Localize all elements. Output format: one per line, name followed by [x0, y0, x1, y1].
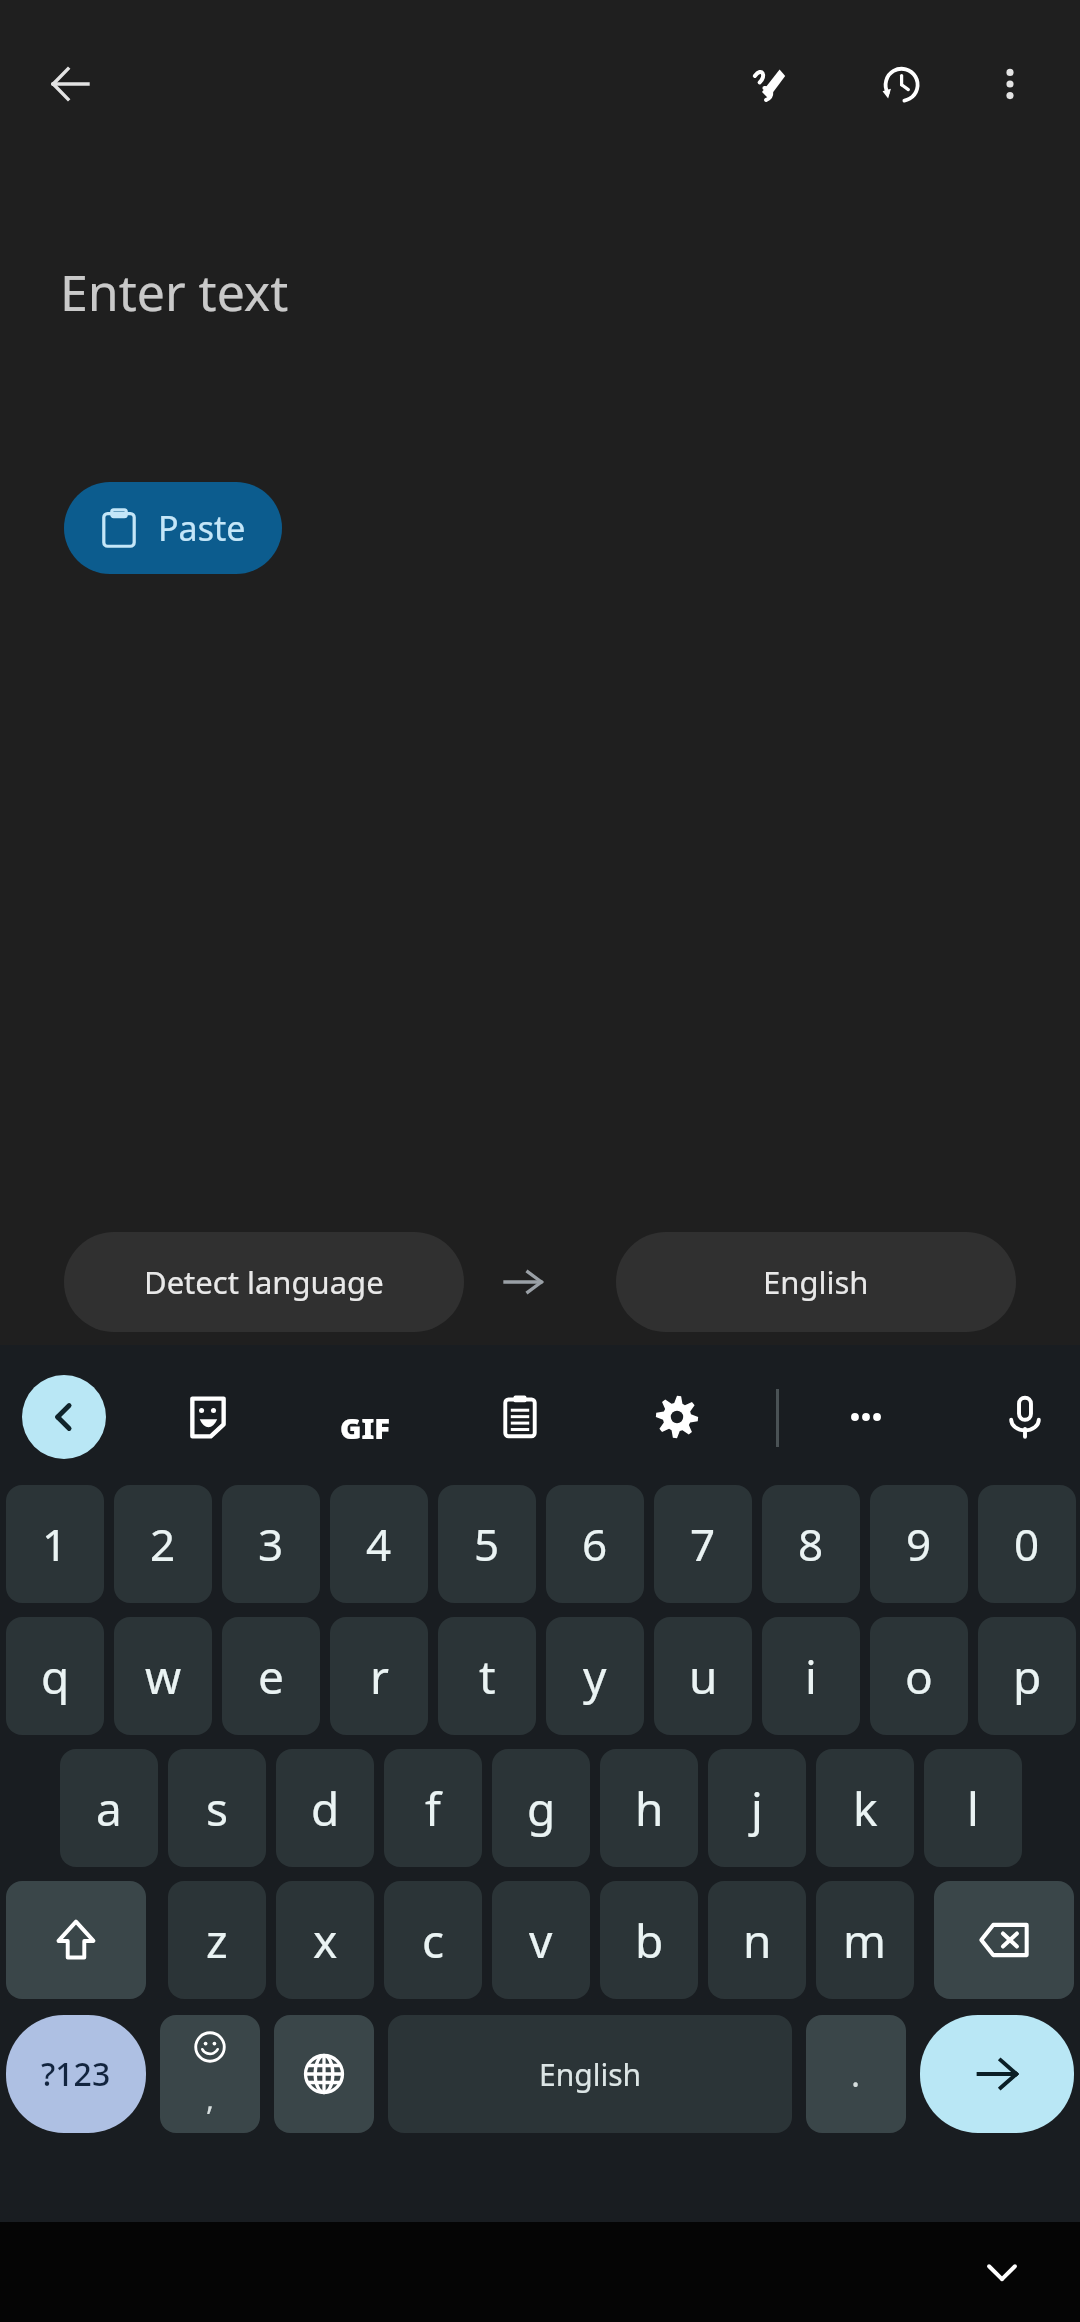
button[interactable]: 2: [114, 1485, 212, 1603]
staticText: p: [1013, 1645, 1042, 1708]
button[interactable]: l: [924, 1749, 1022, 1867]
button[interactable]: m: [816, 1881, 914, 1999]
staticText: m: [843, 1909, 887, 1972]
button[interactable]: u: [654, 1617, 752, 1735]
button[interactable]: y: [546, 1617, 644, 1735]
button[interactable]: i: [762, 1617, 860, 1735]
button[interactable]: 4: [330, 1485, 428, 1603]
button[interactable]: x: [276, 1881, 374, 1999]
button[interactable]: Hide keyboard: [970, 2240, 1034, 2304]
button[interactable]: Emoji: [160, 2015, 260, 2133]
staticText: o: [905, 1645, 933, 1708]
staticText: z: [206, 1909, 228, 1972]
staticText: y: [583, 1645, 607, 1708]
staticText: English: [539, 2054, 642, 2095]
staticText: 3: [258, 1514, 284, 1574]
staticText: u: [689, 1645, 718, 1708]
button[interactable]: 5: [438, 1485, 536, 1603]
button[interactable]: d: [276, 1749, 374, 1867]
button[interactable]: Paste: [64, 482, 282, 574]
staticText: l: [967, 1777, 979, 1840]
staticText: 2: [150, 1514, 176, 1574]
button[interactable]: ?123: [6, 2015, 146, 2133]
button[interactable]: Close toolbar: [22, 1375, 106, 1459]
staticText: h: [635, 1777, 664, 1840]
staticText: g: [527, 1777, 556, 1840]
staticText: ,: [206, 2078, 215, 2119]
staticText: b: [635, 1909, 664, 1972]
button[interactable]: s: [168, 1749, 266, 1867]
button[interactable]: b: [600, 1881, 698, 1999]
button[interactable]: j: [708, 1749, 806, 1867]
button[interactable]: a: [60, 1749, 158, 1867]
button[interactable]: Detect language: [64, 1232, 464, 1332]
staticText: n: [743, 1909, 772, 1972]
staticText: Paste: [158, 505, 246, 551]
staticText: i: [805, 1645, 817, 1708]
staticText: 5: [474, 1514, 500, 1574]
button[interactable]: More: [826, 1377, 906, 1457]
button[interactable]: English: [616, 1232, 1016, 1332]
button[interactable]: 0: [978, 1485, 1076, 1603]
button[interactable]: p: [978, 1617, 1076, 1735]
button[interactable]: Change language: [274, 2015, 374, 2133]
button[interactable]: 6: [546, 1485, 644, 1603]
staticText: c: [422, 1909, 445, 1972]
button[interactable]: Backspace: [934, 1881, 1074, 1999]
staticText: GIF: [340, 1408, 390, 1447]
button[interactable]: n: [708, 1881, 806, 1999]
button[interactable]: More options: [968, 42, 1052, 126]
button[interactable]: v: [492, 1881, 590, 1999]
button[interactable]: Back: [28, 42, 112, 126]
button[interactable]: Period: [806, 2015, 906, 2133]
staticText: 8: [798, 1514, 824, 1574]
button[interactable]: 7: [654, 1485, 752, 1603]
staticText: 4: [366, 1514, 392, 1574]
staticText: Detect language: [144, 1261, 384, 1303]
button[interactable]: r: [330, 1617, 428, 1735]
staticText: 0: [1014, 1514, 1040, 1574]
staticText: 1: [42, 1514, 68, 1574]
button[interactable]: o: [870, 1617, 968, 1735]
staticText: a: [96, 1777, 122, 1840]
button[interactable]: 9: [870, 1485, 968, 1603]
staticText: q: [41, 1645, 70, 1708]
button[interactable]: 1: [6, 1485, 104, 1603]
button[interactable]: Settings: [637, 1377, 717, 1457]
button[interactable]: h: [600, 1749, 698, 1867]
staticText: s: [206, 1777, 229, 1840]
button[interactable]: c: [384, 1881, 482, 1999]
staticText: k: [853, 1777, 878, 1840]
button[interactable]: Clipboard: [480, 1377, 560, 1457]
button[interactable]: 3: [222, 1485, 320, 1603]
button[interactable]: g: [492, 1749, 590, 1867]
staticText: 6: [582, 1514, 608, 1574]
staticText: t: [479, 1645, 496, 1708]
button[interactable]: Enter: [920, 2015, 1074, 2133]
staticText: v: [529, 1909, 553, 1972]
button[interactable]: t: [438, 1617, 536, 1735]
staticText: w: [145, 1645, 182, 1708]
button[interactable]: q: [6, 1617, 104, 1735]
button[interactable]: z: [168, 1881, 266, 1999]
button[interactable]: Shift: [6, 1881, 146, 1999]
staticText: Enter text: [60, 258, 289, 326]
button[interactable]: History: [858, 42, 942, 126]
button[interactable]: f: [384, 1749, 482, 1867]
button[interactable]: English: [388, 2015, 792, 2133]
button[interactable]: GIF: [325, 1377, 405, 1457]
button[interactable]: Handwriting: [728, 42, 812, 126]
staticText: .: [851, 2051, 861, 2097]
staticText: e: [258, 1645, 284, 1708]
button[interactable]: Stickers: [168, 1377, 248, 1457]
staticText: r: [370, 1645, 389, 1708]
staticText: x: [313, 1909, 338, 1972]
button[interactable]: k: [816, 1749, 914, 1867]
button[interactable]: Voice input: [985, 1377, 1065, 1457]
staticText: j: [751, 1777, 763, 1840]
staticText: f: [425, 1777, 441, 1840]
button[interactable]: w: [114, 1617, 212, 1735]
button[interactable]: 8: [762, 1485, 860, 1603]
staticText: d: [311, 1777, 340, 1840]
button[interactable]: e: [222, 1617, 320, 1735]
